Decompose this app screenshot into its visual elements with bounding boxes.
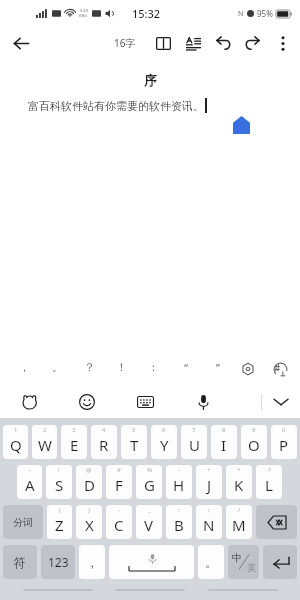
- staticText: Y: [160, 435, 169, 455]
- button[interactable]: Redo: [238, 28, 268, 58]
- button[interactable]: More options: [268, 28, 298, 58]
- button[interactable]: 9: [241, 425, 267, 459]
- button[interactable]: Settings: [236, 357, 260, 381]
- button[interactable]: Chinese English toggle: [228, 545, 259, 579]
- button[interactable]: ，: [10, 352, 38, 382]
- staticText: 。: [205, 555, 217, 570]
- button[interactable]: 。: [198, 545, 224, 579]
- staticText: H: [173, 475, 185, 495]
- staticText: V: [144, 515, 154, 535]
- other: Chinese English toggle: [228, 545, 259, 579]
- staticText: 7: [192, 426, 196, 434]
- button[interactable]: 符: [3, 545, 37, 579]
- staticText: KB/s: [79, 13, 88, 18]
- staticText: 16字: [114, 36, 136, 50]
- button[interactable]: 。: [43, 352, 71, 382]
- button[interactable]: Undo: [208, 28, 238, 58]
- button[interactable]: ;: [196, 505, 222, 539]
- button[interactable]: Book view: [148, 28, 178, 58]
- button[interactable]: 6: [151, 425, 177, 459]
- staticText: 富百科软件站有你需要的软件资讯。: [28, 99, 204, 113]
- staticText: M: [232, 515, 246, 535]
- staticText: @: [86, 466, 92, 474]
- staticText: O: [248, 435, 260, 455]
- staticText: 3: [72, 426, 76, 434]
- staticText: ?: [268, 466, 271, 474]
- button[interactable]: “: [172, 352, 200, 382]
- staticText: I: [221, 435, 227, 455]
- button[interactable]: +: [196, 465, 222, 499]
- button[interactable]: ?: [256, 465, 282, 499]
- button[interactable]: 2: [32, 425, 57, 459]
- button[interactable]: 7: [181, 425, 207, 459]
- staticText: 。: [52, 360, 63, 374]
- button[interactable]: Backspace: [256, 505, 297, 539]
- button[interactable]: %: [136, 465, 162, 499]
- staticText: ): [88, 506, 90, 514]
- button[interactable]: ~: [17, 465, 42, 499]
- staticText: 5: [132, 426, 136, 434]
- button[interactable]: *: [226, 465, 252, 499]
- button[interactable]: @: [76, 465, 102, 499]
- button[interactable]: /: [226, 505, 252, 539]
- staticText: J: [207, 475, 212, 495]
- staticText: 15:32: [132, 6, 161, 21]
- button[interactable]: Voice input: [188, 387, 218, 417]
- button[interactable]: 5: [121, 425, 147, 459]
- button[interactable]: Hide keyboard: [262, 386, 300, 418]
- staticText: R: [99, 435, 109, 455]
- staticText: _: [148, 506, 151, 514]
- button[interactable]: Enter: [263, 545, 297, 579]
- staticText: K: [234, 475, 244, 495]
- button[interactable]: 4: [91, 425, 117, 459]
- button[interactable]: Stickers: [14, 387, 44, 417]
- staticText: G: [144, 475, 155, 495]
- button[interactable]: 1: [3, 425, 28, 459]
- staticText: D: [84, 475, 95, 495]
- button[interactable]: -: [166, 465, 192, 499]
- button[interactable]: :: [166, 505, 192, 539]
- button[interactable]: ：: [139, 352, 167, 382]
- button[interactable]: ？: [75, 352, 103, 382]
- staticText: 8: [222, 426, 226, 434]
- button[interactable]: Format text: [178, 28, 208, 58]
- button[interactable]: ): [76, 505, 102, 539]
- button[interactable]: ！: [107, 352, 135, 382]
- button[interactable]: Keyboard layout: [130, 387, 160, 417]
- staticText: 4: [102, 426, 106, 434]
- other: Enter: [263, 545, 297, 579]
- staticText: P: [279, 435, 289, 455]
- button[interactable]: -: [106, 505, 132, 539]
- other: Space: [109, 545, 194, 579]
- staticText: ;: [208, 506, 210, 514]
- staticText: ”: [216, 360, 220, 375]
- staticText: T: [130, 435, 139, 455]
- button[interactable]: Emoji: [72, 387, 102, 417]
- button[interactable]: 0: [271, 425, 297, 459]
- button[interactable]: Back: [6, 28, 36, 58]
- button[interactable]: 16字: [108, 28, 142, 58]
- staticText: N: [203, 515, 215, 535]
- button[interactable]: #: [106, 465, 132, 499]
- button[interactable]: 3: [61, 425, 87, 459]
- staticText: -: [178, 466, 180, 474]
- button[interactable]: (: [47, 505, 72, 539]
- other: Backspace: [256, 505, 297, 539]
- button[interactable]: 分词: [3, 505, 43, 539]
- staticText: ！: [116, 360, 127, 374]
- button[interactable]: ”: [204, 352, 232, 382]
- button[interactable]: 8: [211, 425, 237, 459]
- staticText: 9: [252, 426, 256, 434]
- staticText: A: [25, 475, 35, 495]
- staticText: *: [237, 466, 241, 474]
- staticText: ，: [86, 555, 98, 570]
- staticText: U: [189, 435, 200, 455]
- button[interactable]: !: [46, 465, 72, 499]
- staticText: S: [55, 475, 64, 495]
- button[interactable]: _: [136, 505, 162, 539]
- button[interactable]: 123: [41, 545, 75, 579]
- button[interactable]: ，: [79, 545, 105, 579]
- button[interactable]: Switch language: [268, 357, 292, 381]
- staticText: X: [85, 515, 94, 535]
- button[interactable]: Space: [109, 545, 194, 579]
